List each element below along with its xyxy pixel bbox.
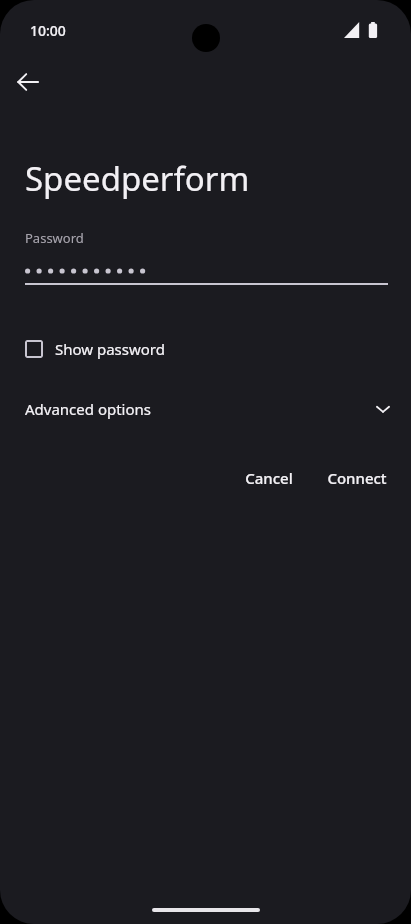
- button[interactable]: Back: [8, 62, 48, 102]
- button[interactable]: Advanced options: [0, 392, 411, 426]
- staticText: 10:00: [30, 21, 66, 40]
- staticText: Show password: [55, 339, 165, 359]
- button[interactable]: Show password: [25, 334, 165, 364]
- button[interactable]: Connect: [315, 460, 399, 496]
- staticText: Cancel: [245, 468, 293, 488]
- button[interactable]: [25, 263, 388, 293]
- staticText: Speedperform: [25, 156, 250, 201]
- staticText: Connect: [327, 468, 387, 488]
- button[interactable]: Cancel: [233, 460, 305, 496]
- staticText: Password: [25, 229, 84, 247]
- staticText: Advanced options: [25, 399, 152, 419]
